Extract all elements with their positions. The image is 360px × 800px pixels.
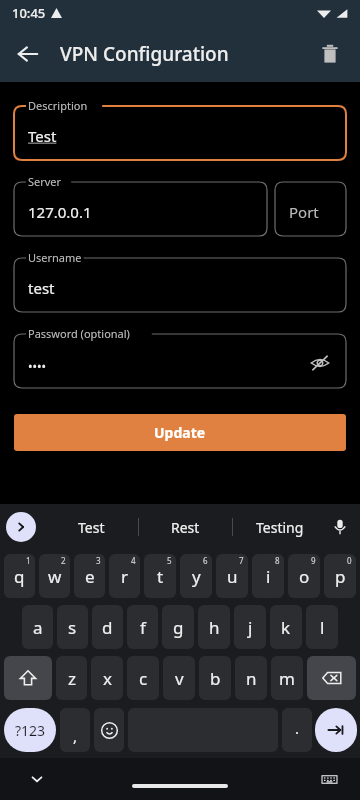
staticText: Server — [28, 174, 62, 189]
staticText: 3 — [96, 555, 101, 566]
button[interactable]: q — [4, 554, 35, 598]
staticText: Port — [289, 202, 319, 222]
button[interactable]: p — [324, 554, 356, 598]
staticText: m — [279, 667, 295, 690]
staticText: 6 — [203, 555, 208, 566]
button[interactable]: x — [91, 656, 123, 700]
button[interactable]: Rest — [139, 504, 232, 550]
staticText: 8 — [275, 555, 280, 566]
staticText: v — [175, 667, 184, 690]
button[interactable]: Update — [14, 414, 346, 451]
staticText: •••• — [28, 358, 47, 374]
staticText: 7 — [239, 555, 244, 566]
staticText: VPN Configuration — [60, 41, 229, 67]
button[interactable]: i — [252, 554, 284, 598]
button[interactable]: k — [270, 605, 302, 649]
staticText: , — [73, 726, 78, 746]
staticText: h — [209, 616, 220, 639]
staticText: b — [210, 667, 221, 690]
staticText: d — [102, 616, 113, 639]
staticText: c — [139, 667, 148, 690]
staticText: y — [192, 565, 201, 588]
staticText: o — [299, 565, 310, 588]
staticText: 2 — [61, 555, 66, 566]
staticText: Username — [28, 250, 82, 265]
button[interactable]: b — [199, 656, 231, 700]
staticText: . — [295, 718, 300, 738]
button[interactable]: ?123 — [4, 708, 56, 752]
button[interactable]: l — [306, 605, 338, 649]
button[interactable]: Voice input — [324, 511, 356, 543]
button[interactable]: u — [216, 554, 248, 598]
staticText: g — [173, 616, 184, 639]
staticText: u — [227, 565, 238, 588]
staticText: w — [48, 565, 62, 588]
button[interactable]: Delete — [306, 30, 354, 78]
staticText: ?123 — [15, 721, 46, 740]
button[interactable]: g — [162, 605, 194, 649]
staticText: e — [85, 565, 95, 588]
staticText: q — [14, 565, 25, 588]
button[interactable]: r — [109, 554, 140, 598]
staticText: z — [68, 667, 76, 690]
staticText: 5 — [167, 555, 172, 566]
button[interactable]: Server — [14, 174, 267, 236]
button[interactable]: Back — [4, 30, 52, 78]
staticText: s — [68, 616, 77, 639]
staticText: a — [33, 616, 43, 639]
button[interactable]: j — [234, 605, 266, 649]
staticText: n — [246, 667, 257, 690]
button[interactable]: h — [198, 605, 230, 649]
staticText: j — [248, 616, 253, 639]
staticText: 1 — [26, 555, 31, 566]
staticText: 9 — [311, 555, 316, 566]
staticText: p — [335, 565, 346, 588]
button[interactable]: z — [56, 656, 87, 700]
button[interactable]: Change keyboard — [316, 766, 342, 792]
staticText: f — [140, 616, 146, 639]
staticText: 10:45 — [12, 4, 46, 22]
staticText: Testing — [256, 518, 304, 537]
button[interactable]: v — [163, 656, 195, 700]
button[interactable]: , — [60, 708, 90, 752]
button[interactable]: Description — [14, 98, 346, 160]
button[interactable]: Port — [275, 174, 346, 236]
staticText: Description — [28, 98, 88, 113]
button[interactable]: o — [288, 554, 320, 598]
button[interactable]: Username — [14, 250, 346, 312]
button[interactable]: c — [127, 656, 159, 700]
staticText: 0 — [347, 555, 352, 566]
button[interactable]: Toggle password visibility — [300, 343, 340, 383]
button[interactable]: Backspace — [307, 656, 356, 700]
button[interactable]: Enter — [315, 708, 357, 752]
button[interactable]: s — [57, 605, 88, 649]
staticText: k — [281, 616, 291, 639]
button[interactable]: f — [127, 605, 158, 649]
button[interactable]: Emoji — [94, 708, 124, 752]
staticText: Test — [28, 126, 57, 146]
staticText: Update — [154, 423, 206, 442]
button[interactable]: . — [282, 708, 312, 752]
button[interactable]: n — [235, 656, 267, 700]
staticText: Test — [78, 518, 105, 537]
staticText: r — [121, 565, 129, 588]
button[interactable]: d — [92, 605, 123, 649]
button[interactable]: Password (optional) — [14, 326, 346, 388]
staticText: test — [28, 278, 55, 298]
button[interactable]: e — [74, 554, 105, 598]
button[interactable]: m — [271, 656, 303, 700]
button[interactable]: a — [22, 605, 53, 649]
button[interactable]: Shift — [4, 656, 52, 700]
staticText: 4 — [131, 555, 136, 566]
button[interactable]: Hide keyboard — [22, 764, 52, 794]
button[interactable]: w — [39, 554, 70, 598]
button[interactable]: y — [180, 554, 212, 598]
button[interactable]: Test — [44, 504, 138, 550]
staticText: Password (optional) — [28, 326, 130, 341]
staticText: 127.0.0.1 — [28, 202, 92, 222]
button[interactable]: Testing — [233, 504, 326, 550]
button[interactable]: t — [144, 554, 176, 598]
button[interactable]: More suggestions — [6, 512, 36, 542]
staticText: i — [266, 565, 271, 588]
